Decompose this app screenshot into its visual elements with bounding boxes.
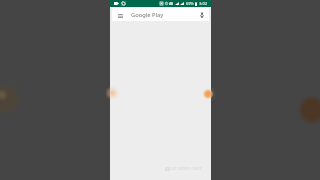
- staticText: 3:02: [199, 1, 208, 7]
- staticText: UC VIDEO CAST: [171, 166, 202, 172]
- staticText: 69%: [186, 1, 194, 6]
- button[interactable]: Google Play: [128, 9, 195, 21]
- button[interactable]: Open navigation menu: [112, 9, 128, 21]
- button[interactable]: Voice search: [195, 9, 209, 21]
- staticText: Google Play: [131, 11, 164, 19]
- staticText: 4G: [169, 2, 174, 6]
